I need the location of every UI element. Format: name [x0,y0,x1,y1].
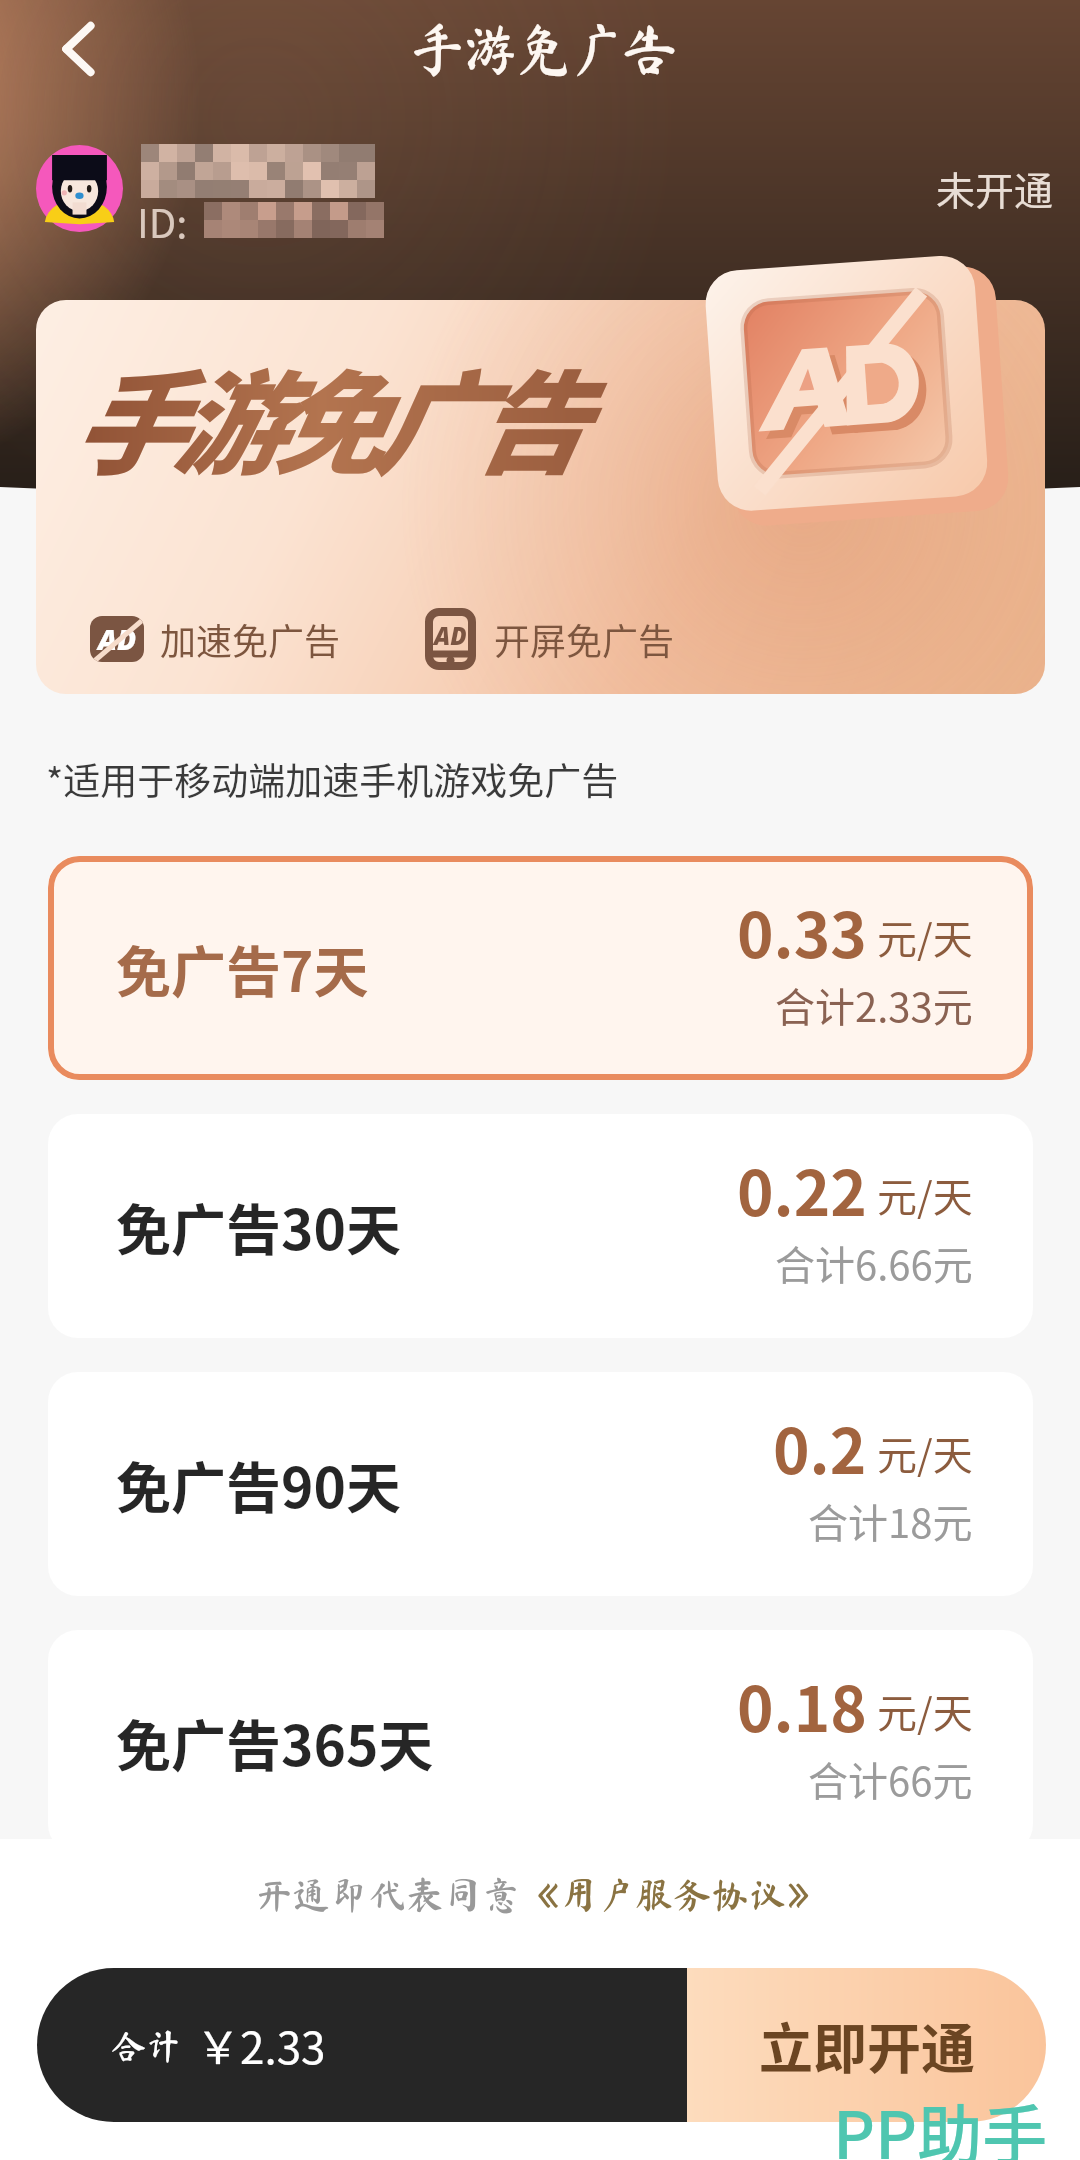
staticText: 合计18元 [808,1492,973,1550]
button[interactable]: 《用户服务协议》 [521,1876,826,1914]
staticText: AD [98,620,137,658]
staticText: PP助手 [833,2084,1048,2160]
staticText: 0.22 [737,1144,867,1234]
staticText: 0.18 [737,1660,867,1750]
staticText: 元/天 [877,1424,973,1482]
staticText: 0.2 [773,1402,867,1492]
staticText: 合计 [111,2028,182,2063]
staticText: 立即开通 [759,2006,975,2084]
staticText: 0.33 [737,886,867,976]
button[interactable]: 手游免广告 [36,300,1045,694]
button[interactable]: 合计 [37,1968,1046,2122]
staticText: 免广告90天 [116,1444,401,1524]
staticText: 合计6.66元 [775,1234,973,1292]
staticText: 未开通 [936,160,1054,216]
staticText: 手游免广告 [71,335,571,497]
staticText: 手游免广告 [411,21,676,77]
staticText: 元/天 [877,908,973,966]
staticText: ￥2.33 [196,2013,326,2077]
staticText: ID: [137,192,188,250]
staticText: 加速免广告 [160,613,341,665]
button[interactable]: 免广告30天 [48,1114,1033,1338]
staticText: *适用于移动端加速手机游戏免广告 [46,752,619,806]
staticText: 免广告30天 [116,1186,401,1266]
staticText: 免广告365天 [116,1702,434,1782]
staticText: AD [434,619,467,652]
staticText: 免广告7天 [116,928,369,1008]
staticText: 元/天 [877,1166,973,1224]
button[interactable]: 免广告7天 [48,856,1033,1080]
button[interactable]: 免广告365天 [48,1630,1033,1854]
button[interactable]: Back [41,12,117,88]
staticText: 开通即代表同意 [254,1876,521,1914]
staticText: 合计2.33元 [775,976,973,1034]
staticText: 合计66元 [808,1750,973,1808]
button[interactable]: 免广告90天 [48,1372,1033,1596]
staticText: 开屏免广告 [494,613,675,665]
staticText: 元/天 [877,1682,973,1740]
